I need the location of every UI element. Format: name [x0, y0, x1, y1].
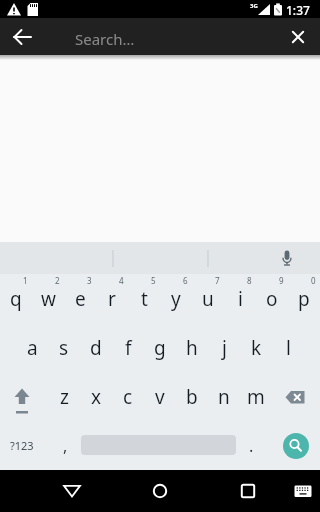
staticText: t [141, 286, 148, 312]
staticText: a [27, 335, 38, 361]
staticText: 3 [87, 275, 92, 286]
staticText: 6 [183, 275, 188, 286]
staticText: d [90, 335, 102, 361]
button[interactable] [0, 372, 48, 421]
button[interactable] [0, 18, 46, 55]
staticText: g [154, 335, 166, 361]
button[interactable]: ?123 [0, 421, 44, 470]
staticText: j [222, 335, 227, 361]
button[interactable]: c [112, 372, 144, 421]
button[interactable]: a [16, 323, 48, 372]
button[interactable]: f [112, 323, 144, 372]
staticText: q [10, 286, 22, 312]
staticText: p [298, 286, 310, 312]
button[interactable]: v [144, 372, 176, 421]
button[interactable] [224, 470, 272, 512]
staticText: 1 [23, 275, 28, 286]
button[interactable]: b [176, 372, 208, 421]
staticText: l [286, 335, 291, 361]
button[interactable] [136, 470, 184, 512]
staticText: f [125, 335, 132, 361]
button[interactable]: u [192, 274, 224, 323]
staticText: v [155, 384, 165, 410]
button[interactable]: g [144, 323, 176, 372]
staticText: ?123 [10, 438, 34, 453]
staticText: 1:37 [286, 2, 310, 18]
staticText: o [266, 286, 278, 312]
staticText: z [60, 384, 69, 410]
button[interactable] [283, 433, 309, 459]
button[interactable] [272, 372, 320, 421]
staticText: 2 [55, 275, 60, 286]
button[interactable]: . [236, 421, 266, 470]
button[interactable]: n [208, 372, 240, 421]
button[interactable]: m [240, 372, 272, 421]
button[interactable]: , [47, 421, 83, 470]
staticText: m [247, 384, 265, 410]
button[interactable]: y [160, 274, 192, 323]
button[interactable]: q [0, 274, 32, 323]
button[interactable]: p [288, 274, 320, 323]
button[interactable]: d [80, 323, 112, 372]
staticText: 8 [247, 275, 252, 286]
button[interactable] [271, 242, 303, 274]
staticText: Search… [75, 29, 135, 49]
button[interactable]: r [96, 274, 128, 323]
staticText: s [59, 335, 69, 361]
button[interactable]: l [272, 323, 304, 372]
staticText: w [41, 286, 56, 312]
button[interactable]: z [48, 372, 80, 421]
button[interactable]: j [208, 323, 240, 372]
button[interactable]: e [64, 274, 96, 323]
staticText: 9 [279, 275, 284, 286]
button[interactable]: x [80, 372, 112, 421]
staticText: r [108, 286, 116, 312]
staticText: b [186, 384, 198, 410]
staticText: 3G [250, 2, 258, 10]
staticText: , [63, 435, 68, 457]
button[interactable]: t [128, 274, 160, 323]
button[interactable] [277, 18, 318, 55]
staticText: 4 [119, 275, 124, 286]
staticText: 5 [151, 275, 156, 286]
staticText: 0 [311, 275, 316, 286]
staticText: k [251, 335, 262, 361]
staticText: u [202, 286, 214, 312]
button[interactable]: h [176, 323, 208, 372]
button[interactable]: s [48, 323, 80, 372]
staticText: . [249, 435, 254, 457]
button[interactable]: w [32, 274, 64, 323]
staticText: n [218, 384, 230, 410]
staticText: c [123, 384, 133, 410]
staticText: 7 [215, 275, 220, 286]
staticText: h [186, 335, 198, 361]
button[interactable] [286, 470, 320, 512]
staticText: x [91, 384, 102, 410]
staticText: y [171, 286, 181, 312]
staticText: i [238, 286, 243, 312]
button[interactable] [48, 470, 96, 512]
button[interactable]: o [256, 274, 288, 323]
staticText: e [75, 286, 86, 312]
button[interactable]: k [240, 323, 272, 372]
button[interactable]: i [224, 274, 256, 323]
